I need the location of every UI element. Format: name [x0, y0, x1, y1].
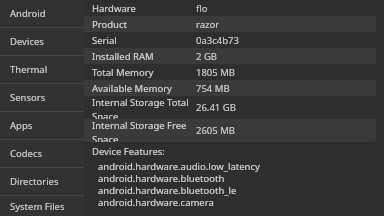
staticText: razor — [196, 18, 220, 31]
staticText: Available Memory — [92, 82, 172, 95]
staticText: Product — [92, 18, 127, 31]
staticText: Serial — [92, 34, 117, 47]
button[interactable]: Thermal — [0, 56, 84, 83]
staticText: android.hardware.bluetooth_le — [98, 184, 237, 196]
staticText: Hardware — [92, 2, 136, 15]
button[interactable]: Sensors — [0, 84, 84, 111]
staticText: 0a3c4b73 — [196, 34, 239, 47]
staticText: Internal Storage Free — [92, 119, 187, 132]
staticText: Thermal — [10, 63, 48, 76]
staticText: Internal Storage Total — [92, 96, 189, 109]
button[interactable]: System Files — [0, 196, 84, 216]
staticText: android.hardware.bluetooth — [98, 172, 225, 184]
staticText: android.hardware.audio.low_latency — [98, 160, 260, 172]
staticText: Space — [92, 133, 119, 142]
button[interactable]: Internal Storage Total — [84, 96, 384, 119]
staticText: System Files — [10, 200, 65, 213]
staticText: Apps — [10, 119, 33, 132]
staticText: Total Memory — [92, 66, 154, 79]
staticText: Installed RAM — [92, 50, 154, 63]
staticText: Sensors — [10, 91, 46, 104]
staticText: Directories — [10, 175, 59, 188]
staticText: 1805 MB — [196, 66, 235, 79]
button[interactable]: Installed RAM — [84, 48, 384, 64]
staticText: 26.41 GB — [196, 101, 236, 114]
staticText: Codecs — [10, 147, 43, 160]
staticText: android.hardware.camera — [98, 196, 214, 208]
button[interactable]: Directories — [0, 168, 84, 195]
button[interactable]: Devices — [0, 28, 84, 55]
staticText: Devices — [10, 35, 44, 48]
button[interactable]: Apps — [0, 112, 84, 139]
button[interactable]: Product — [84, 16, 384, 32]
staticText: Device Features: — [92, 145, 165, 158]
button[interactable]: Android — [0, 0, 84, 27]
button[interactable]: Available Memory — [84, 80, 384, 96]
button[interactable]: Hardware — [84, 0, 384, 16]
button[interactable]: Internal Storage Free — [84, 119, 384, 142]
staticText: Space — [92, 110, 119, 119]
staticText: 754 MB — [196, 82, 230, 95]
button[interactable]: Total Memory — [84, 64, 384, 80]
staticText: Android — [10, 7, 46, 20]
button[interactable]: Serial — [84, 32, 384, 48]
staticText: 2605 MB — [196, 124, 235, 137]
staticText: 2 GB — [196, 50, 217, 63]
button[interactable]: Codecs — [0, 140, 84, 167]
staticText: flo — [196, 2, 208, 15]
